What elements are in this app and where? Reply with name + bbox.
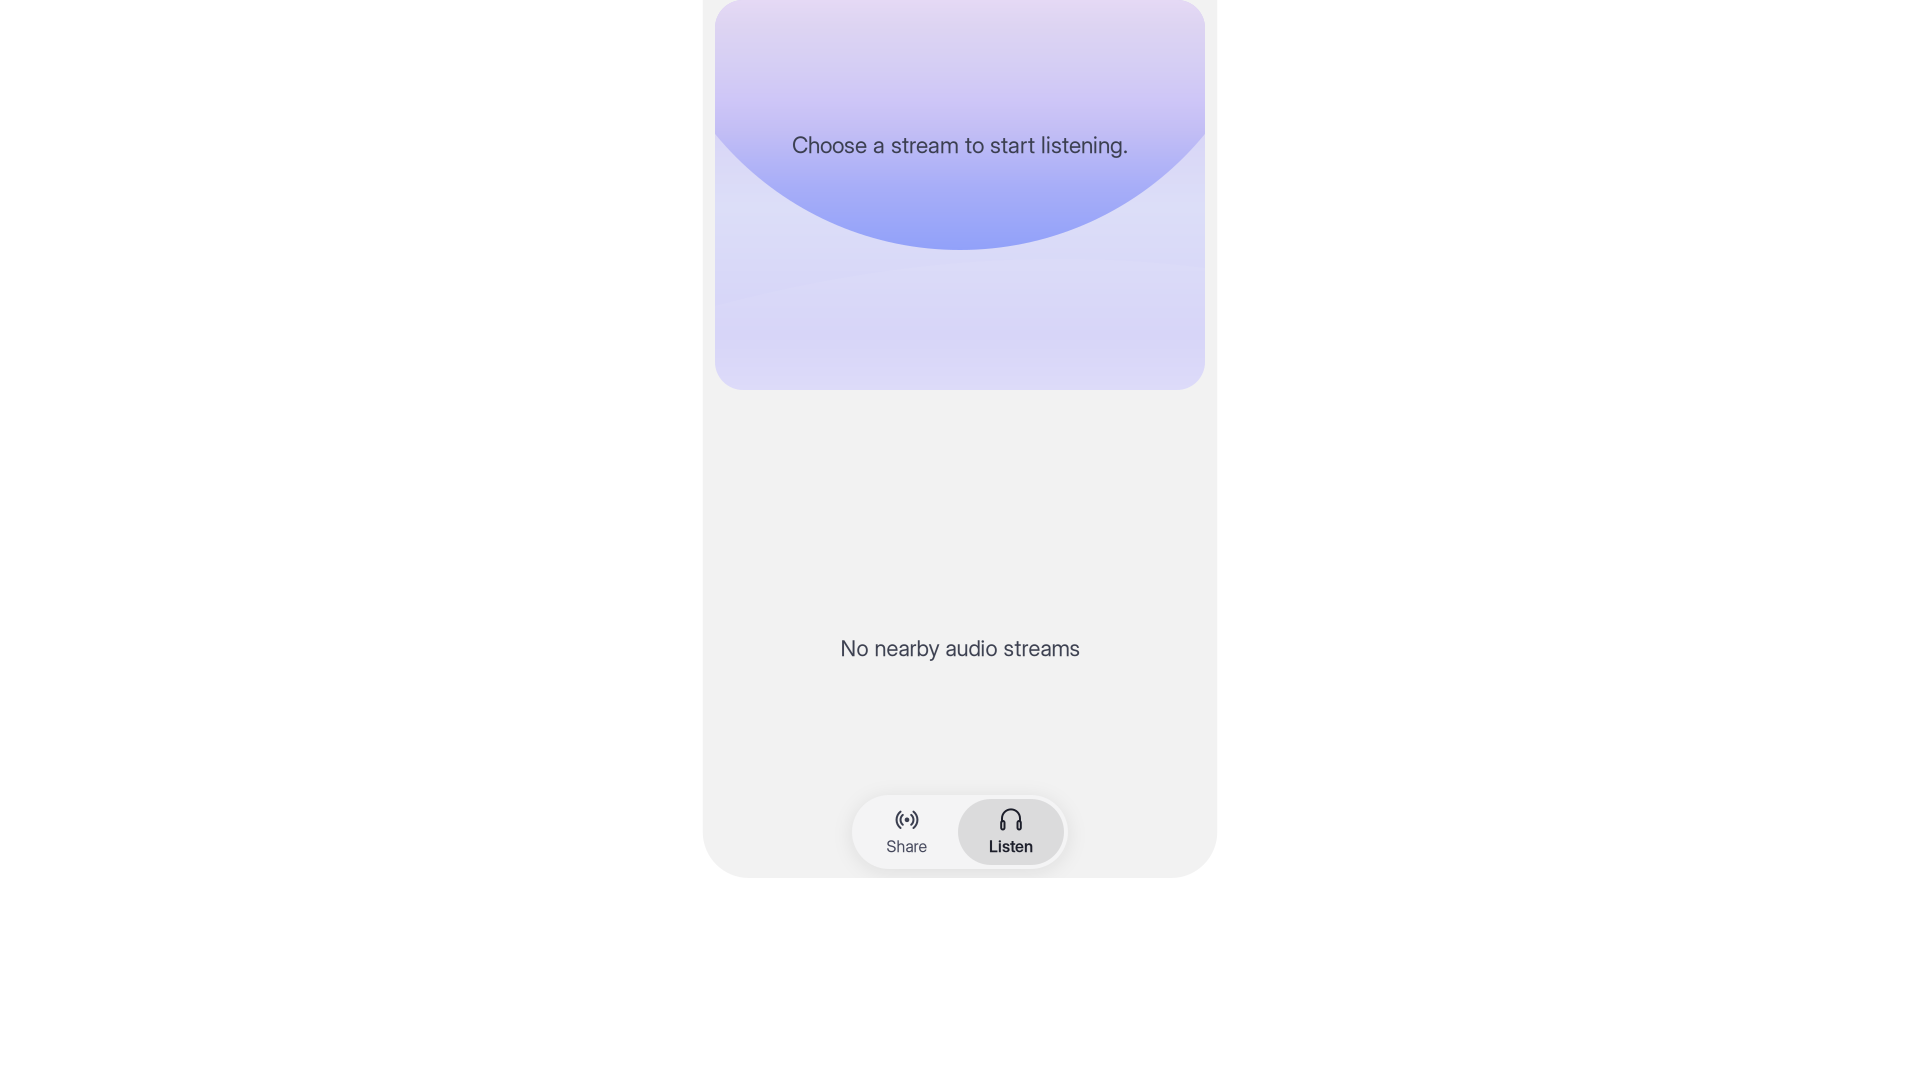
staticText: Choose a stream to start listening. [792,131,1128,159]
staticText: No nearby audio streams [840,635,1079,662]
button[interactable]: Share [856,799,958,865]
staticText: Listen [989,837,1033,856]
button[interactable]: Listen [958,799,1064,865]
staticText: Share [886,837,927,856]
